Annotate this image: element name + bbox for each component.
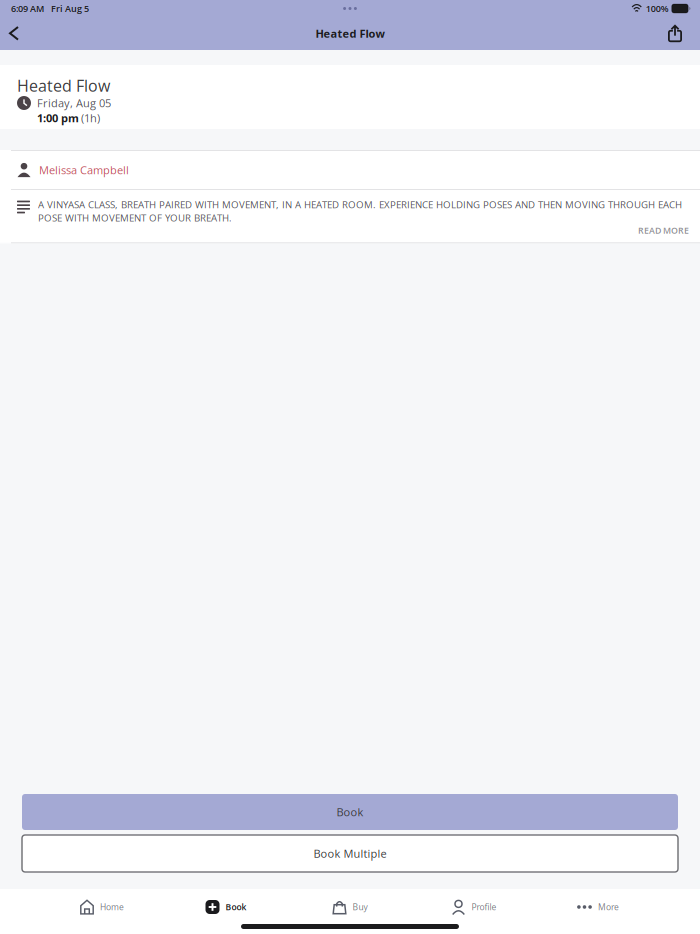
button[interactable]: Profile bbox=[412, 899, 536, 915]
staticText: Book Multiple bbox=[313, 846, 386, 861]
staticText: Home bbox=[100, 901, 124, 913]
staticText: (1h) bbox=[81, 110, 100, 126]
staticText: A VINYASA CLASS, BREATH PAIRED WITH MOVE… bbox=[38, 198, 682, 224]
staticText: READ MORE bbox=[638, 224, 689, 236]
button[interactable]: Book bbox=[22, 794, 678, 830]
staticText: Heated Flow bbox=[17, 75, 110, 96]
button[interactable]: Melissa Campbell bbox=[0, 151, 700, 189]
button[interactable]: Buy bbox=[288, 899, 412, 915]
staticText: Friday, Aug 05 bbox=[37, 95, 111, 111]
button[interactable]: Home bbox=[40, 899, 164, 915]
staticText: Buy bbox=[352, 901, 367, 913]
staticText: 100% bbox=[646, 2, 669, 15]
staticText: Book bbox=[225, 901, 246, 913]
staticText: 1:00 pm bbox=[37, 110, 79, 126]
button[interactable]: Back bbox=[0, 17, 28, 49]
staticText: Heated Flow bbox=[315, 26, 384, 41]
button[interactable]: Share bbox=[661, 17, 689, 49]
staticText: 6:09 AM bbox=[11, 2, 44, 15]
button[interactable]: More bbox=[536, 899, 660, 915]
staticText: Profile bbox=[471, 901, 496, 913]
staticText: Melissa Campbell bbox=[39, 162, 129, 178]
staticText: Book bbox=[336, 804, 363, 820]
button[interactable]: Book bbox=[164, 899, 288, 915]
staticText: More bbox=[598, 901, 619, 913]
button[interactable]: READ MORE bbox=[638, 224, 689, 236]
staticText: Fri Aug 5 bbox=[51, 2, 89, 15]
button[interactable]: Book Multiple bbox=[22, 835, 678, 872]
